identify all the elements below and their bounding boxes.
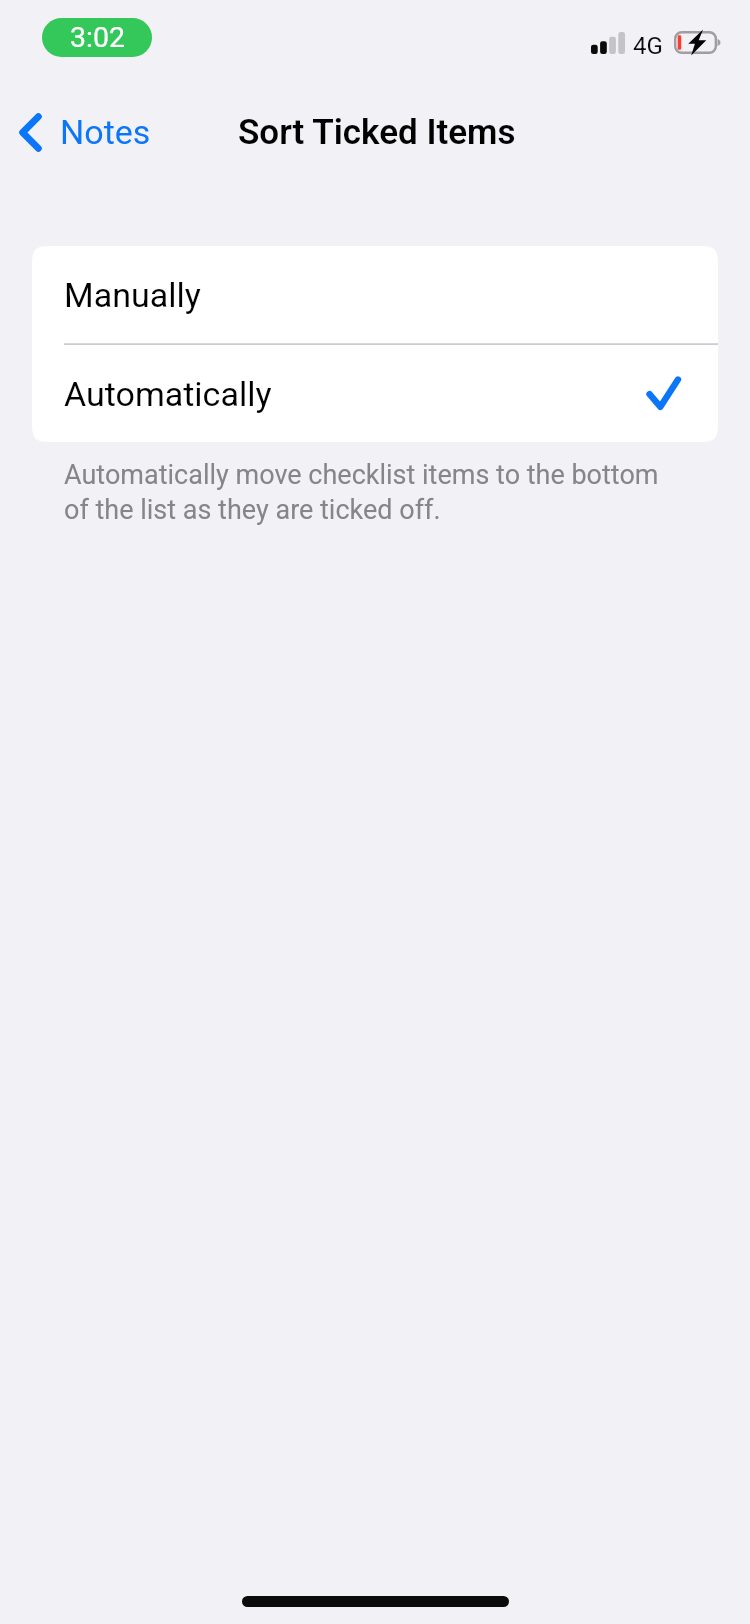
staticText: 4G (633, 32, 663, 54)
button[interactable]: Back to Notes (0, 104, 165, 160)
staticText: Automatically (64, 374, 272, 414)
staticText: Manually (64, 275, 201, 315)
staticText: 3:02 (70, 21, 125, 54)
staticText: Notes (60, 112, 151, 152)
staticText: Automatically move checklist items to th… (64, 456, 688, 526)
button[interactable]: Manually (32, 246, 718, 343)
button[interactable]: Automatically (32, 345, 718, 442)
staticText: Sort Ticked Items (238, 112, 516, 153)
